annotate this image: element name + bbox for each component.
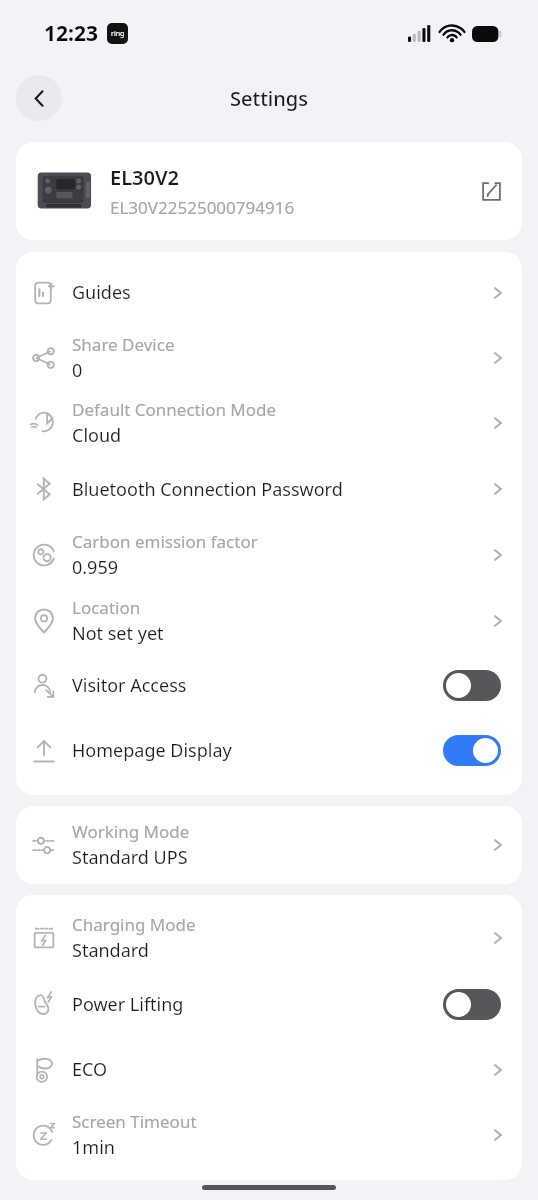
button[interactable]: Visitor Access	[443, 670, 501, 701]
staticText: Share Device	[72, 333, 175, 356]
staticText: Homepage Display	[72, 738, 443, 763]
staticText: 1min	[72, 1135, 115, 1160]
button[interactable]: ECO	[16, 1037, 522, 1102]
button[interactable]: Working Mode	[16, 813, 522, 877]
staticText: Charging Mode	[72, 913, 196, 936]
staticText: ECO	[72, 1057, 490, 1082]
button[interactable]: Share Device	[16, 325, 522, 390]
staticText: Visitor Access	[72, 673, 443, 698]
staticText: 12:23	[44, 19, 98, 48]
staticText: EL30V22525000794916	[110, 196, 295, 219]
button[interactable]: Homepage Display	[443, 735, 501, 766]
button[interactable]: Power Lifting	[443, 989, 501, 1020]
button[interactable]: Charging Mode	[16, 905, 522, 971]
button[interactable]: Edit	[468, 168, 514, 214]
staticText: 0.959	[72, 555, 119, 580]
button[interactable]: Guides	[16, 260, 522, 325]
button[interactable]: Carbon emission factor	[16, 522, 522, 588]
staticText: Cloud	[72, 423, 122, 448]
staticText: Location	[72, 596, 141, 619]
button[interactable]: Location	[16, 588, 522, 653]
staticText: Default Connection Mode	[72, 398, 277, 421]
button[interactable]: Bluetooth Connection Password	[16, 456, 522, 522]
staticText: EL30V2	[110, 164, 180, 191]
staticText: Standard UPS	[72, 845, 188, 870]
staticText: Working Mode	[72, 820, 190, 843]
staticText: Screen Timeout	[72, 1110, 197, 1133]
button[interactable]: Default Connection Mode	[16, 390, 522, 456]
staticText: Not set yet	[72, 621, 164, 646]
staticText: Settings	[230, 85, 308, 112]
staticText: 0	[72, 358, 83, 383]
staticText: Standard	[72, 938, 149, 963]
button[interactable]: Back	[16, 75, 62, 121]
staticText: Power Lifting	[72, 992, 443, 1017]
staticText: Carbon emission factor	[72, 530, 258, 553]
staticText: Guides	[72, 280, 490, 305]
staticText: Bluetooth Connection Password	[72, 477, 490, 502]
button[interactable]: Screen Timeout	[16, 1102, 522, 1168]
staticText: ring	[111, 29, 125, 39]
button[interactable]: EL30V2	[16, 142, 522, 240]
